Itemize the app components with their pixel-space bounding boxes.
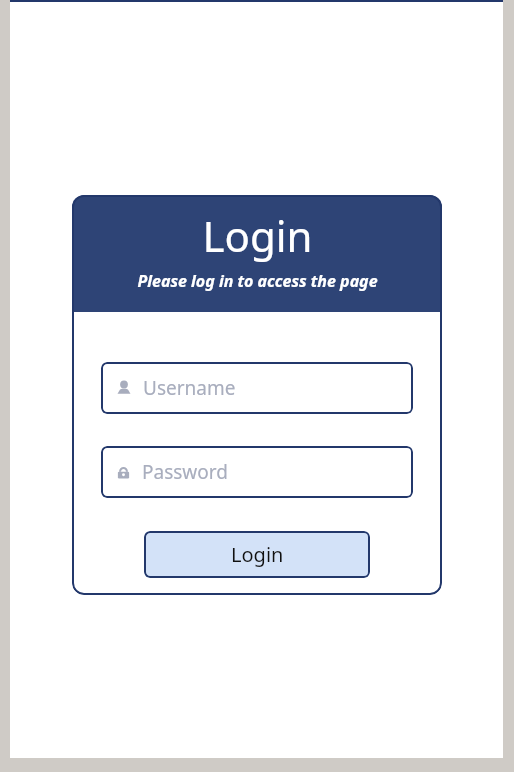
staticText: Login [202,207,313,264]
staticText: Username [143,375,236,401]
staticText: Password [142,459,228,485]
staticText: Login [231,541,284,568]
button[interactable]: Password [101,446,413,498]
button[interactable]: Username [101,362,413,414]
staticText: Please log in to access the page [137,270,378,292]
button[interactable]: Login [144,531,370,578]
